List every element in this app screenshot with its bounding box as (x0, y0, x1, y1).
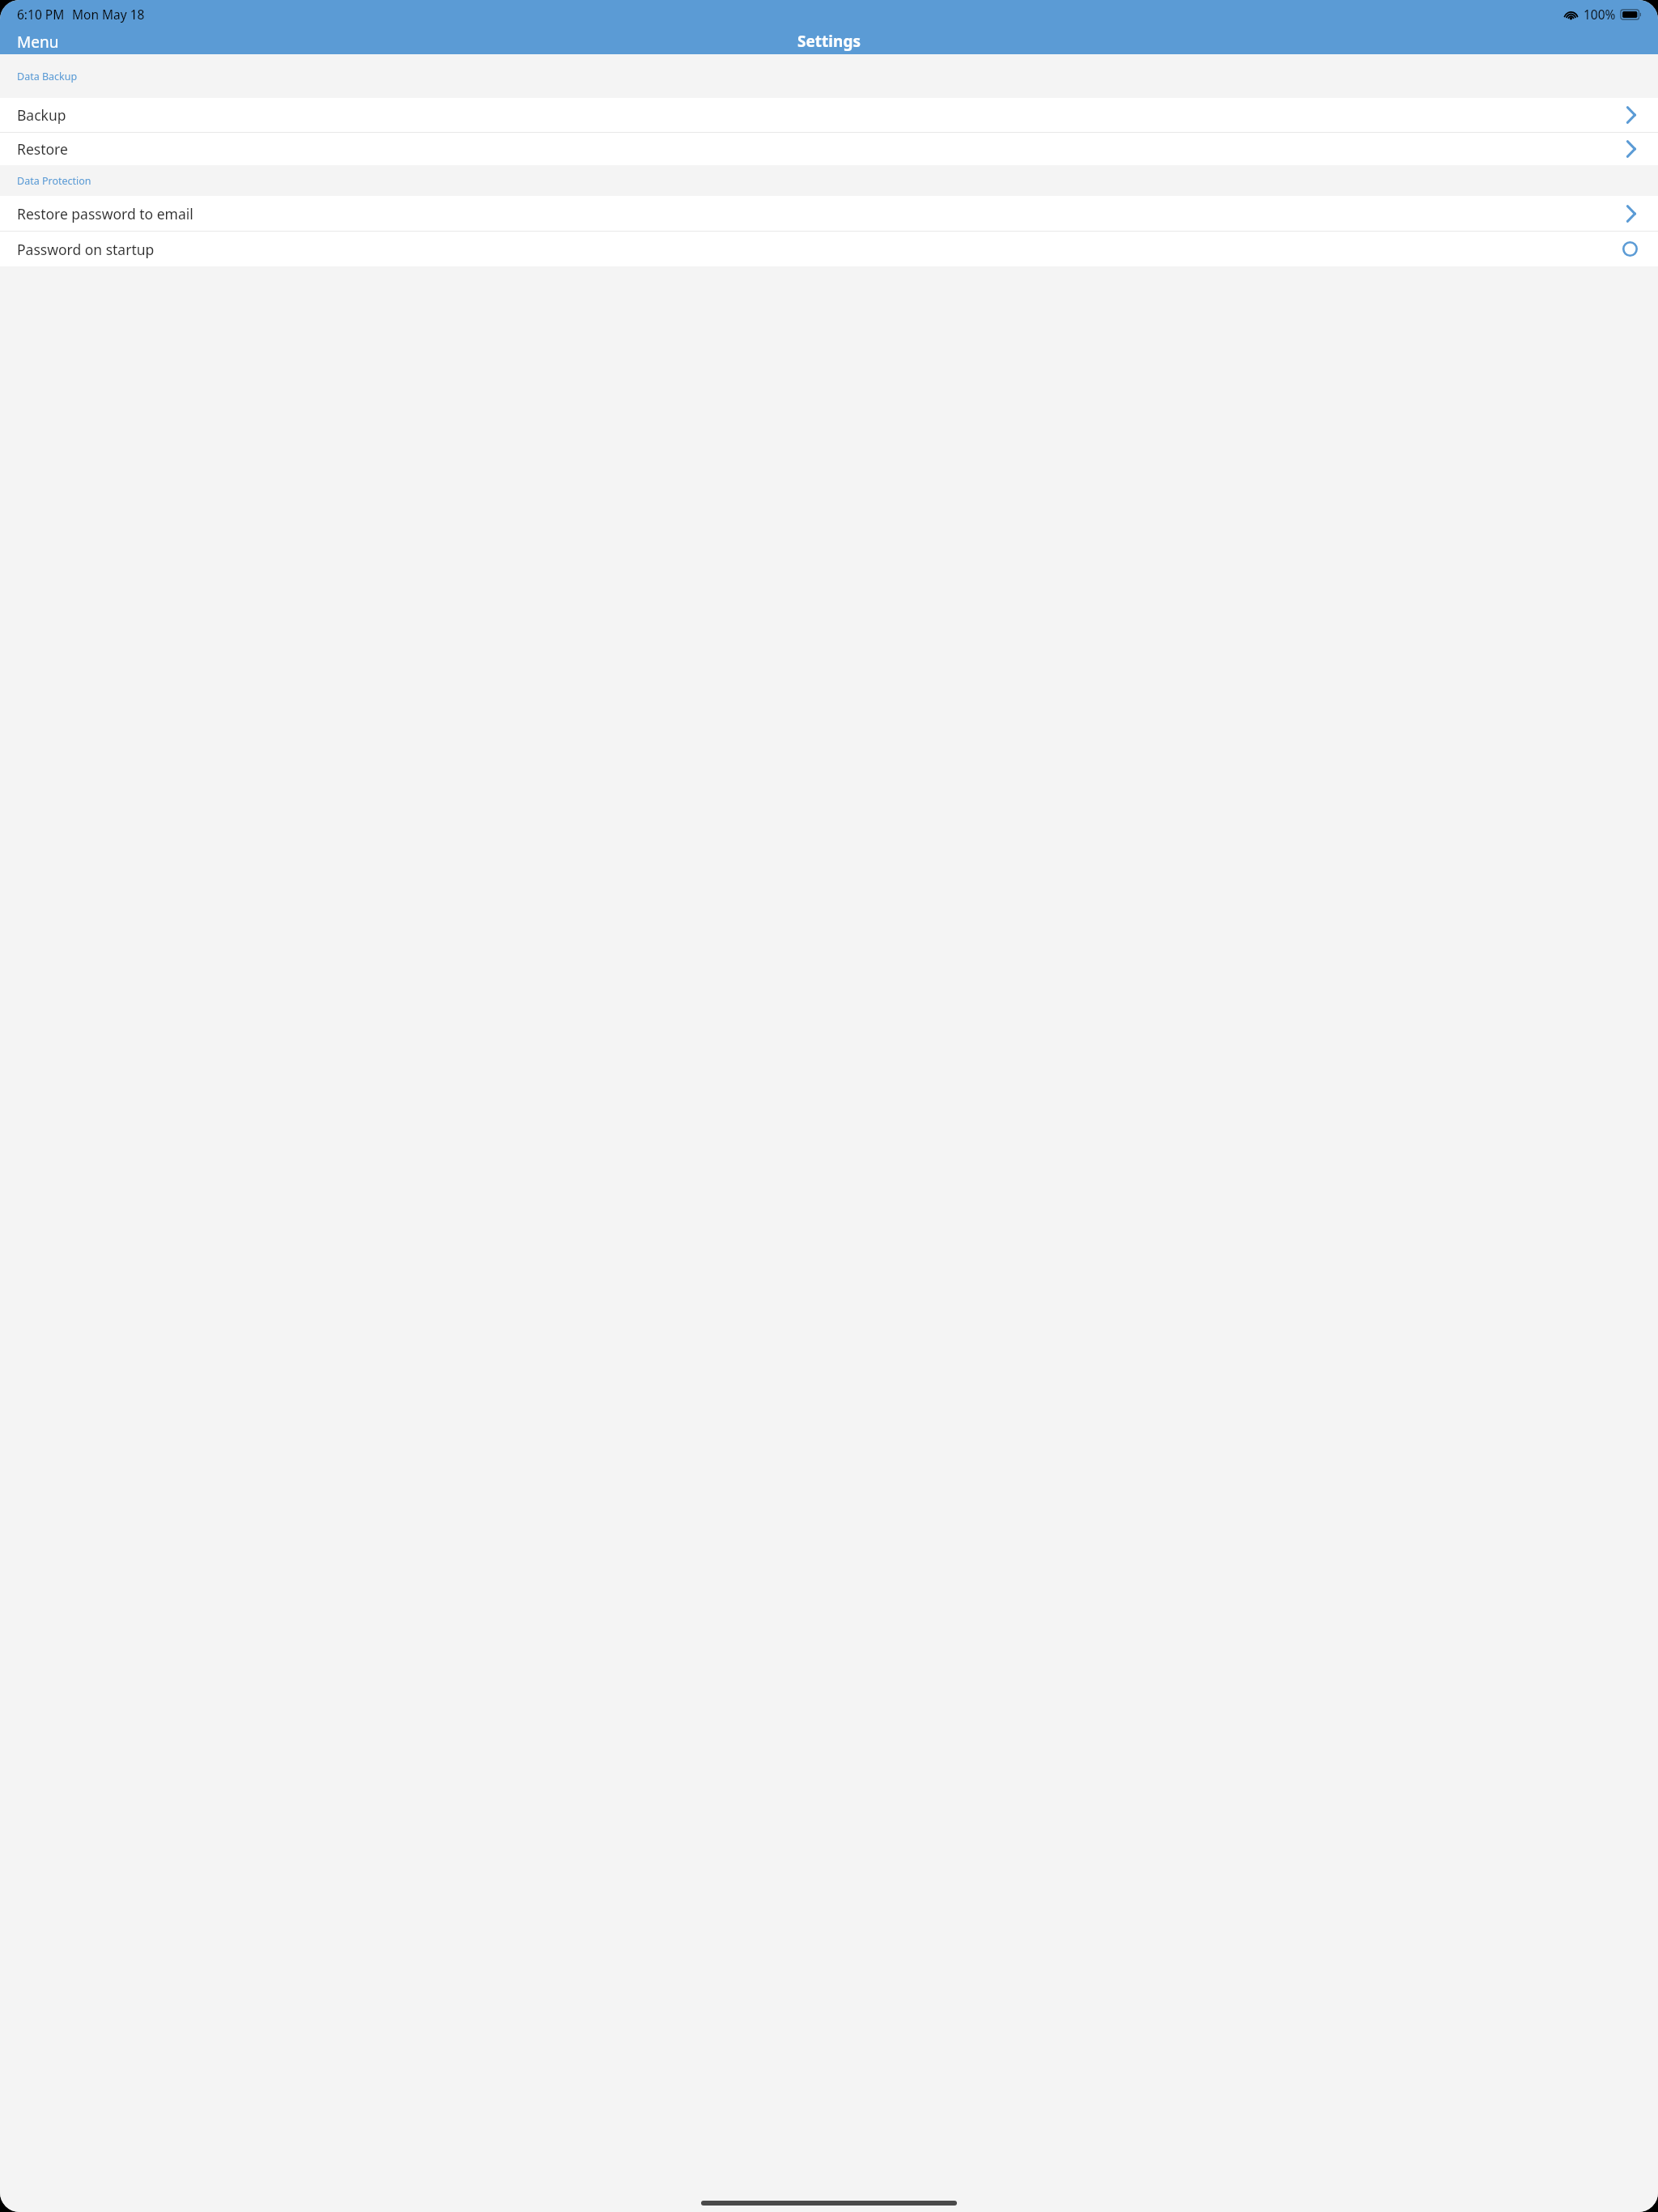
other: Open (1625, 140, 1638, 158)
other: Toggle password on startup (1622, 241, 1638, 257)
button[interactable]: Menu (0, 28, 76, 54)
staticText: Backup (17, 105, 66, 125)
staticText: Password on startup (17, 240, 155, 259)
button[interactable]: Restore password to email (0, 196, 1658, 231)
button[interactable]: Restore (0, 133, 1658, 165)
staticText: Restore password to email (17, 204, 193, 223)
other: Open (1625, 106, 1638, 124)
staticText: 6:10 PM (17, 6, 65, 23)
staticText: Menu (17, 32, 59, 51)
button[interactable]: Password on startup (0, 232, 1658, 266)
staticText: Data Protection (17, 174, 91, 188)
other: Open (1625, 205, 1638, 223)
staticText: Data Backup (17, 70, 78, 83)
staticText: 100% (1584, 6, 1616, 23)
staticText: Restore (17, 139, 68, 159)
staticText: Settings (797, 31, 861, 52)
button[interactable]: Backup (0, 98, 1658, 132)
staticText: Mon May 18 (72, 6, 145, 23)
